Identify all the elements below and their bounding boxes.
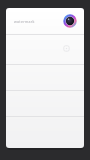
button[interactable] [6,117,84,148]
staticText: watermark [14,19,35,24]
button[interactable]: watermark [6,8,84,34]
button[interactable]: Profile [63,14,77,28]
button[interactable]: More options [63,45,70,52]
